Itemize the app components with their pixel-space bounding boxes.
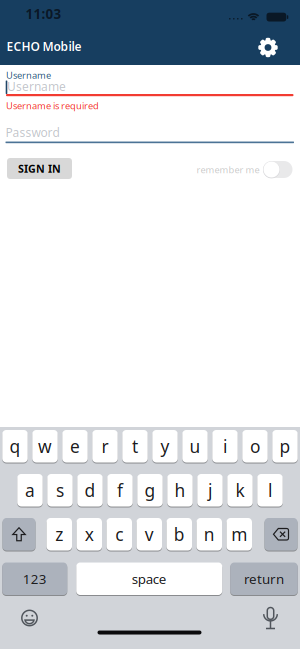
button[interactable]: Shift: [2, 517, 35, 551]
staticText: x: [85, 523, 94, 546]
staticText: Username: [7, 78, 66, 94]
staticText: SIGN IN: [18, 161, 61, 176]
button[interactable]: Emoji: [15, 603, 44, 632]
button[interactable]: b: [166, 517, 192, 551]
staticText: Username is required: [6, 99, 99, 112]
staticText: t: [132, 435, 138, 458]
button[interactable]: i: [212, 429, 238, 463]
staticText: f: [117, 479, 123, 502]
staticText: z: [55, 523, 63, 546]
button[interactable]: o: [242, 429, 268, 463]
button[interactable]: x: [76, 517, 102, 551]
staticText: m: [231, 523, 247, 546]
button[interactable]: t: [122, 429, 148, 463]
button[interactable]: c: [106, 517, 132, 551]
button[interactable]: e: [62, 429, 88, 463]
button[interactable]: n: [196, 517, 222, 551]
staticText: a: [25, 479, 35, 502]
staticText: p: [279, 435, 290, 458]
staticText: space: [132, 570, 167, 588]
button[interactable]: y: [152, 429, 178, 463]
staticText: y: [160, 435, 169, 458]
button[interactable]: l: [257, 473, 283, 507]
staticText: 123: [23, 570, 47, 588]
button[interactable]: j: [197, 473, 223, 507]
button[interactable]: s: [47, 473, 73, 507]
staticText: w: [38, 435, 52, 458]
button[interactable]: u: [182, 429, 208, 463]
button[interactable]: space: [76, 562, 222, 595]
staticText: j: [208, 479, 212, 502]
button[interactable]: m: [226, 517, 252, 551]
button[interactable]: v: [136, 517, 162, 551]
button[interactable]: z: [46, 517, 72, 551]
staticText: o: [250, 435, 260, 458]
button[interactable]: d: [77, 473, 103, 507]
button[interactable]: q: [2, 429, 28, 463]
staticText: s: [56, 479, 64, 502]
button[interactable]: SIGN IN: [7, 158, 72, 179]
staticText: e: [70, 435, 80, 458]
staticText: g: [144, 479, 155, 502]
button[interactable]: a: [17, 473, 43, 507]
staticText: h: [174, 479, 185, 502]
button[interactable]: remember me: [263, 161, 292, 178]
button[interactable]: k: [227, 473, 253, 507]
button[interactable]: g: [137, 473, 163, 507]
button[interactable]: Dictation: [257, 601, 283, 635]
staticText: d: [84, 479, 95, 502]
staticText: u: [189, 435, 200, 458]
button[interactable]: Settings: [250, 29, 286, 65]
button[interactable]: h: [167, 473, 193, 507]
button[interactable]: return: [230, 562, 298, 595]
staticText: Username: [6, 69, 51, 81]
staticText: n: [204, 523, 215, 546]
button[interactable]: p: [272, 429, 298, 463]
staticText: v: [145, 523, 154, 546]
staticText: k: [235, 479, 244, 502]
button[interactable]: 123: [2, 562, 67, 595]
button[interactable]: Delete: [264, 517, 297, 551]
staticText: 11:03: [25, 5, 61, 23]
staticText: Password: [5, 124, 59, 140]
staticText: return: [244, 570, 284, 588]
staticText: r: [101, 435, 108, 458]
staticText: remember me: [196, 163, 259, 176]
staticText: i: [223, 435, 227, 458]
button[interactable]: w: [32, 429, 58, 463]
staticText: l: [268, 479, 272, 502]
staticText: q: [9, 435, 20, 458]
button[interactable]: r: [92, 429, 118, 463]
staticText: c: [115, 523, 123, 546]
staticText: b: [174, 523, 185, 546]
button[interactable]: f: [107, 473, 133, 507]
staticText: ECHO Mobile: [6, 38, 81, 54]
